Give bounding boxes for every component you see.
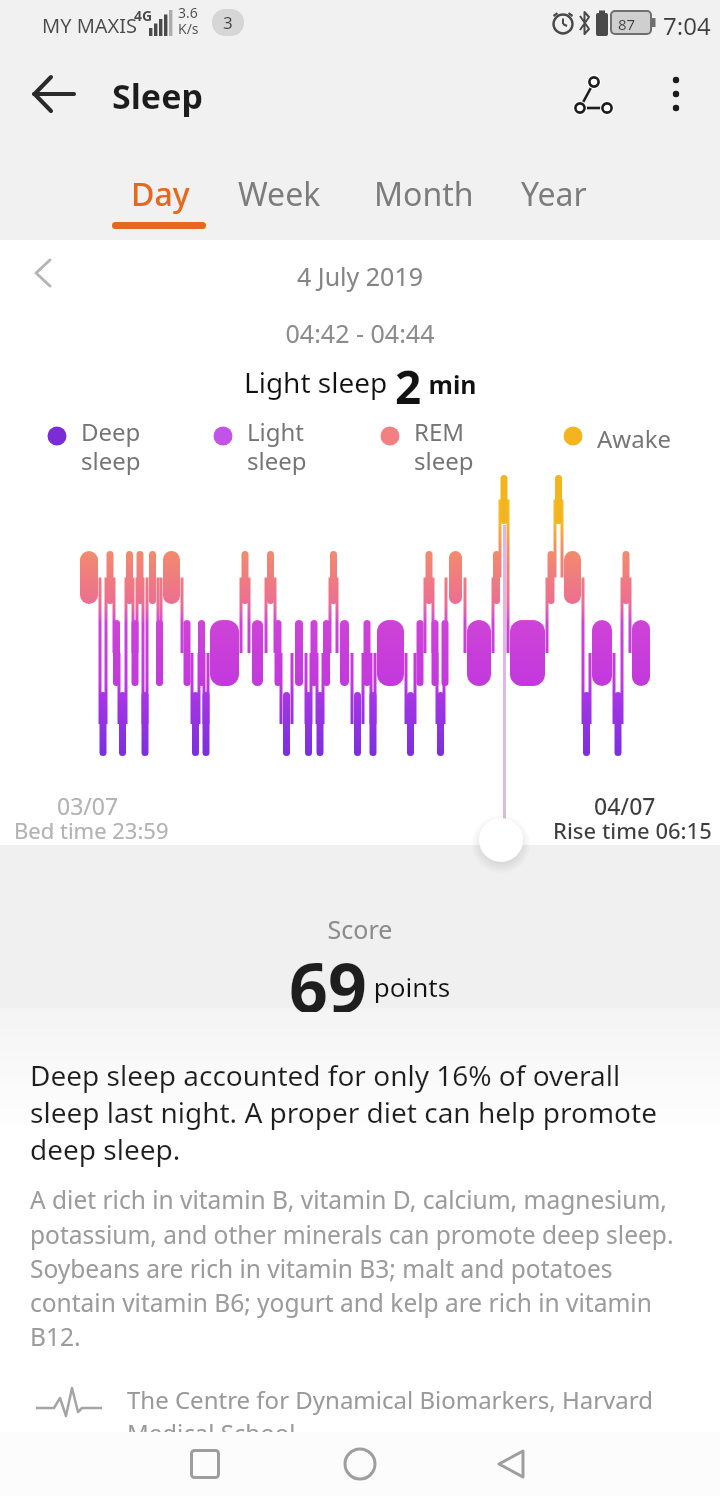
- button[interactable]: [560, 64, 620, 124]
- staticText: Awake: [597, 422, 672, 455]
- staticText: points: [367, 969, 451, 1004]
- staticText: Light sleep: [244, 363, 395, 401]
- staticText: Deep sleep: [81, 415, 141, 475]
- button[interactable]: Day: [131, 172, 190, 216]
- staticText: 04/07: [594, 790, 656, 821]
- staticText: The Centre for Dynamical Biomarkers, Har…: [127, 1383, 653, 1449]
- staticText: Rise time 06:15: [553, 815, 712, 845]
- button[interactable]: [470, 810, 532, 872]
- staticText: 04:42 - 04:44: [0, 316, 720, 350]
- staticText: 03/07: [57, 790, 119, 821]
- button[interactable]: [28, 256, 64, 290]
- staticText: 4 July 2019: [0, 259, 720, 293]
- staticText: min: [422, 367, 477, 401]
- staticText: 7:04: [663, 9, 711, 42]
- staticText: 87: [618, 14, 636, 34]
- button[interactable]: [24, 64, 84, 124]
- staticText: 2: [395, 355, 422, 407]
- staticText: 3: [223, 11, 233, 34]
- button[interactable]: Month: [374, 172, 474, 216]
- button[interactable]: Week: [238, 172, 321, 216]
- button[interactable]: Year: [521, 172, 587, 216]
- staticText: Deep sleep accounted for only 16% of ove…: [30, 1056, 657, 1168]
- button[interactable]: [466, 1432, 556, 1496]
- staticText: 4G: [134, 6, 153, 25]
- staticText: K/s: [178, 19, 199, 38]
- staticText: 3.6: [178, 3, 198, 22]
- staticText: REM sleep: [414, 415, 474, 475]
- staticText: MY MAXIS: [42, 12, 138, 39]
- staticText: Light sleep: [247, 415, 307, 475]
- button[interactable]: [160, 1432, 250, 1496]
- button[interactable]: [315, 1432, 405, 1496]
- staticText: 69: [289, 940, 367, 1012]
- staticText: Bed time 23:59: [14, 815, 169, 845]
- staticText: A diet rich in vitamin B, vitamin D, cal…: [30, 1183, 674, 1353]
- staticText: Sleep: [112, 73, 203, 119]
- button[interactable]: [648, 64, 704, 124]
- staticText: Score: [0, 912, 720, 946]
